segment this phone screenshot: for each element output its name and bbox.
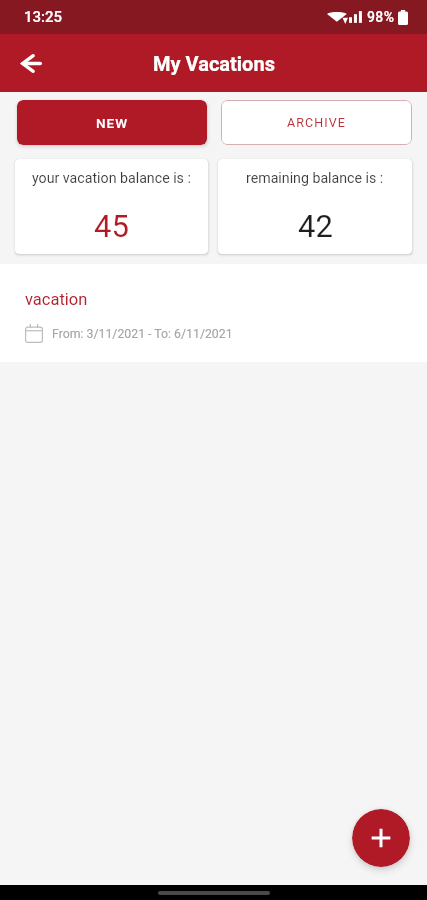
staticText: 45 [94,208,129,244]
staticText: vacation [25,290,88,309]
staticText: NEW [96,115,129,131]
button[interactable]: NEW [17,100,207,145]
button[interactable]: your vacation balance is : [15,159,208,254]
staticText: ARCHIVE [287,115,347,130]
button[interactable]: ARCHIVE [221,100,412,145]
button[interactable]: vacation [0,264,427,362]
button[interactable]: Back [10,42,52,84]
staticText: 98% [367,9,395,25]
staticText: 42 [298,208,333,244]
staticText: 13:25 [24,8,63,26]
staticText: remaining balance is : [246,170,384,187]
staticText: My Vacations [153,52,275,75]
button[interactable]: remaining balance is : [218,159,412,254]
staticText: your vacation balance is : [32,170,191,187]
button[interactable]: Add vacation [352,809,410,867]
staticText: From: 3/11/2021 - To: 6/11/2021 [52,327,233,341]
